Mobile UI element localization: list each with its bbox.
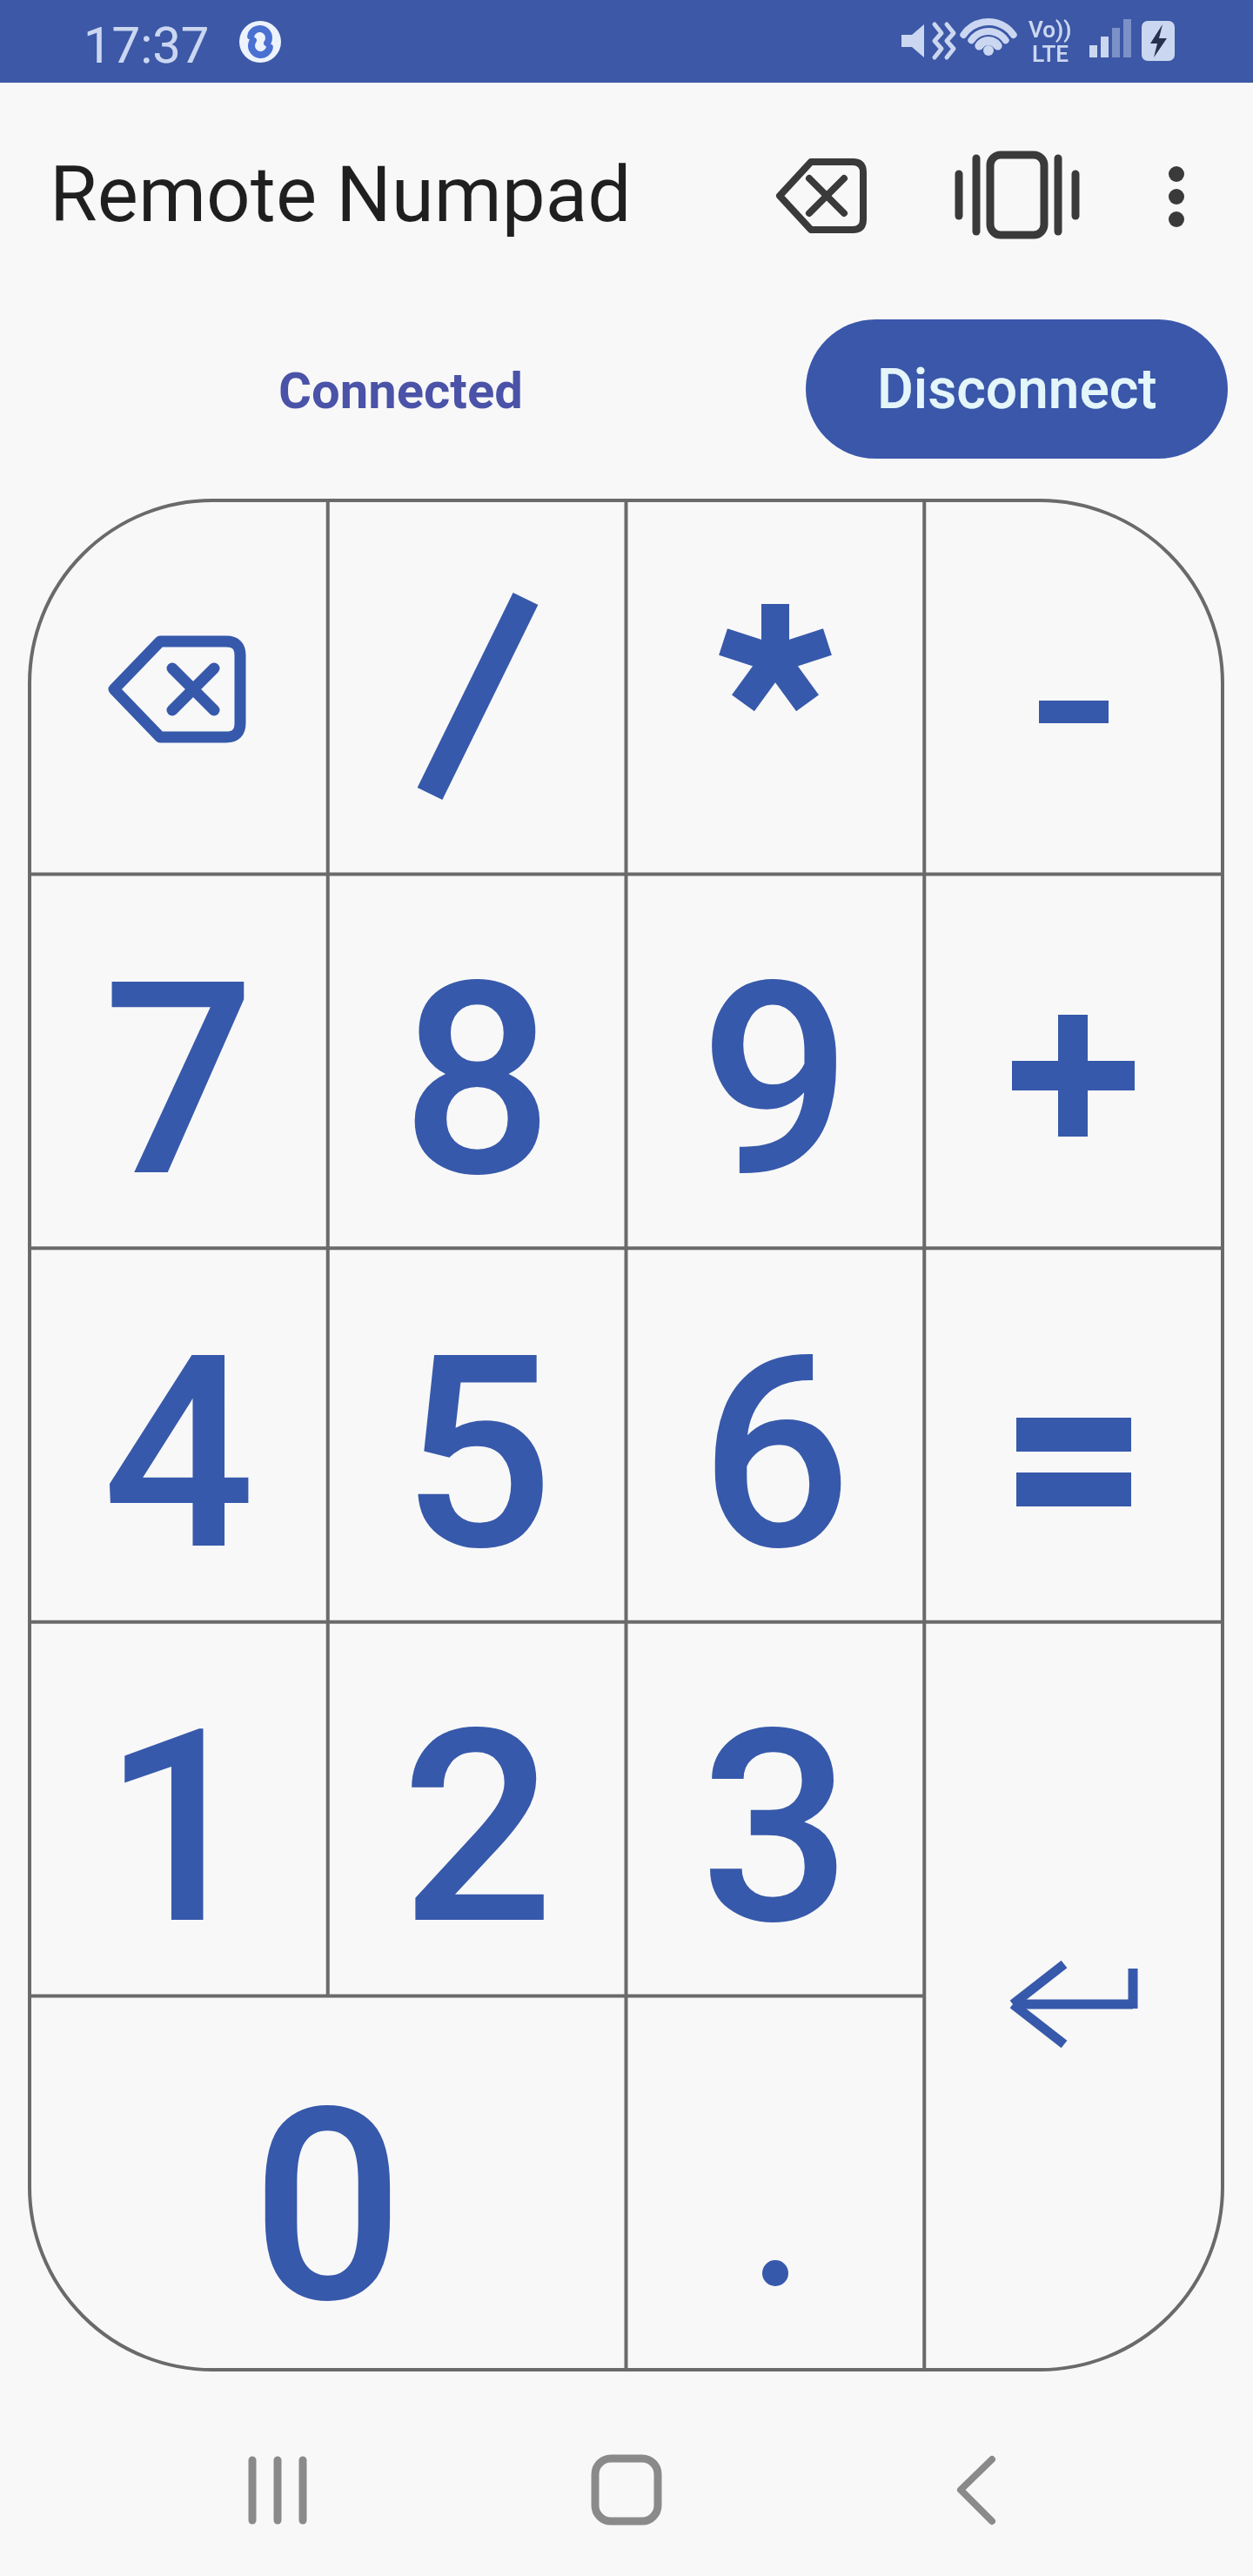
button[interactable]: 3 [630,1644,921,2011]
staticText: Connected [278,361,524,420]
button[interactable]: Disconnect [806,319,1228,459]
button[interactable] [928,896,1219,1264]
button[interactable] [33,522,325,889]
button[interactable]: 2 [332,1644,623,2011]
button[interactable] [630,1999,921,2366]
button[interactable]: 7 [33,896,325,1264]
staticText: Disconnect [877,357,1157,422]
button[interactable]: 4 [33,1270,325,1637]
button[interactable] [881,2412,1072,2568]
button[interactable] [961,138,1074,252]
staticText: Remote Numpad [50,149,632,239]
button[interactable] [182,2412,373,2568]
button[interactable]: 1 [33,1644,325,2011]
button[interactable]: 0 [33,2023,623,2390]
button[interactable] [1129,140,1224,253]
button[interactable] [630,522,921,889]
button[interactable] [928,522,1219,889]
staticText: Vo)) [1029,17,1072,43]
staticText: 2 [401,1671,554,1985]
staticText: 9 [700,923,853,1238]
button[interactable] [928,1626,1219,2366]
button[interactable] [928,1270,1219,1637]
staticText: 17:37 [84,16,210,75]
staticText: 0 [251,2049,405,2364]
staticText: 5 [401,1297,554,1611]
button[interactable]: 8 [332,896,623,1264]
staticText: LTE [1032,41,1069,67]
button[interactable]: 9 [630,896,921,1264]
button[interactable]: 6 [630,1270,921,1637]
staticText: 3 [700,1671,853,1985]
button[interactable] [332,522,623,889]
staticText: 4 [103,1297,256,1611]
staticText: 8 [401,923,554,1238]
staticText: 7 [103,923,256,1238]
button[interactable] [531,2412,722,2568]
staticText: 1 [103,1671,256,1985]
staticText: 6 [700,1297,853,1611]
button[interactable] [765,140,878,253]
button[interactable]: 5 [332,1270,623,1637]
